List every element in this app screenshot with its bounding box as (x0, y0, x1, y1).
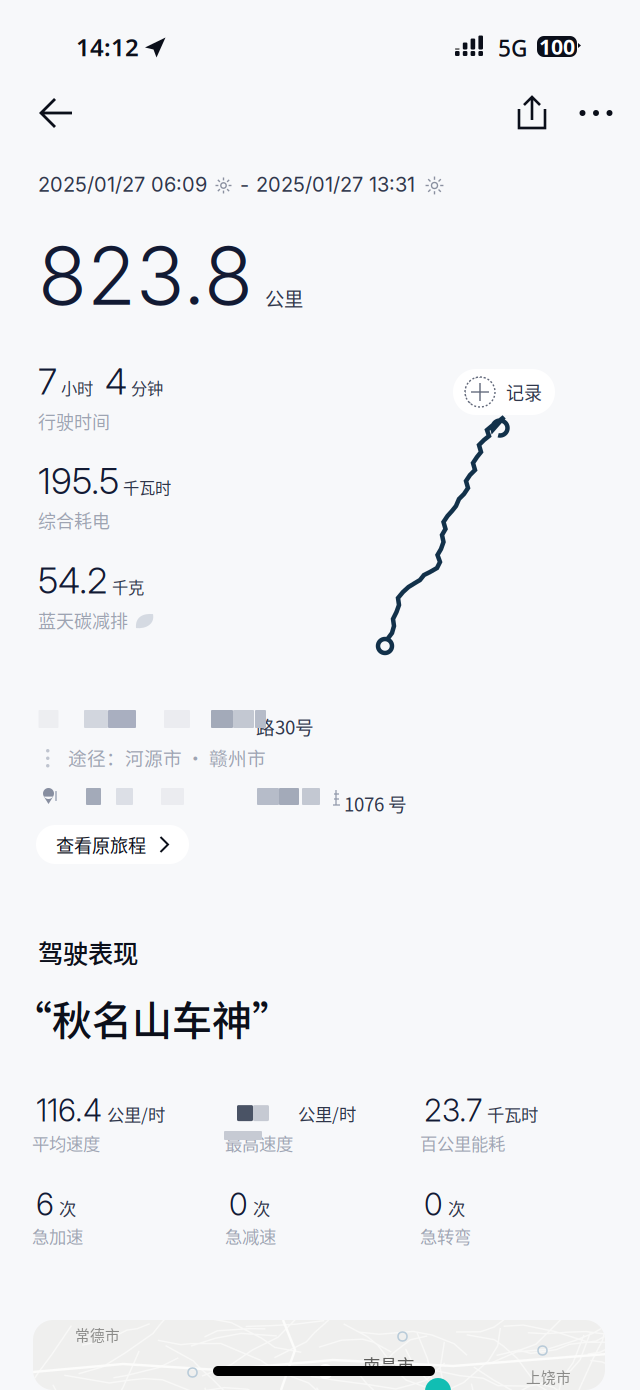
staticText: 116.4 (36, 1092, 102, 1129)
staticText: 急转弯 (420, 1223, 471, 1248)
staticText: 常德市 (75, 1324, 120, 1345)
staticText: - (240, 172, 249, 196)
staticText: 千克 (112, 575, 144, 598)
staticText: 千瓦时 (487, 1101, 538, 1126)
staticText: 195.5 (38, 459, 119, 503)
button[interactable]: 分享 (500, 79, 564, 147)
staticText: 急减速 (225, 1223, 276, 1248)
staticText: 驾驶表现 (38, 934, 138, 970)
staticText: 7 (38, 360, 57, 403)
staticText: 823.8 (38, 227, 253, 324)
staticText: 小时 (61, 376, 93, 399)
staticText: 次 (59, 1195, 76, 1220)
staticText: 2025/01/27 13:31 (256, 172, 415, 196)
staticText: 23.7 (424, 1092, 482, 1129)
staticText: 分钟 (131, 376, 163, 399)
staticText: 路30号 (256, 713, 314, 740)
staticText: 记录 (506, 379, 542, 405)
staticText: 0 (229, 1186, 248, 1223)
staticText: “秋名山车神” (12, 989, 292, 1047)
staticText: 行驶时间 (38, 408, 110, 434)
staticText: 百公里能耗 (420, 1130, 505, 1155)
staticText: 14:12 (76, 31, 139, 63)
staticText: 蓝天碳减排 (38, 607, 128, 633)
staticText: 公里/时 (298, 1101, 356, 1126)
staticText: 最高速度 (225, 1130, 293, 1155)
staticText: 千瓦时 (123, 475, 171, 499)
staticText: 途径：河源市 · 赣州市 (68, 744, 266, 771)
staticText: 6 (36, 1186, 54, 1223)
staticText: 次 (253, 1195, 270, 1220)
staticText: 次 (448, 1195, 465, 1220)
button[interactable]: 返回 (22, 80, 91, 146)
staticText: 公里/时 (107, 1101, 165, 1126)
staticText: 上饶市 (526, 1366, 571, 1387)
staticText: 综合耗电 (38, 507, 110, 533)
staticText: 0 (424, 1186, 443, 1223)
button[interactable]: 查看原旅程 (36, 825, 189, 864)
staticText: 南昌市 (363, 1352, 414, 1377)
staticText: 公里 (265, 284, 303, 312)
staticText: 2025/01/27 06:09 (38, 172, 207, 196)
staticText: 查看原旅程 (56, 831, 146, 858)
button[interactable]: 记录 (453, 369, 555, 415)
staticText: 5G (498, 33, 527, 63)
button[interactable]: 更多 (562, 79, 630, 147)
staticText: 54.2 (38, 559, 108, 602)
staticText: 平均速度 (32, 1130, 100, 1155)
staticText: 1076 号 (344, 790, 407, 817)
staticText: 100 (539, 32, 575, 61)
staticText: 4 (105, 360, 127, 403)
staticText: 急加速 (32, 1223, 83, 1248)
